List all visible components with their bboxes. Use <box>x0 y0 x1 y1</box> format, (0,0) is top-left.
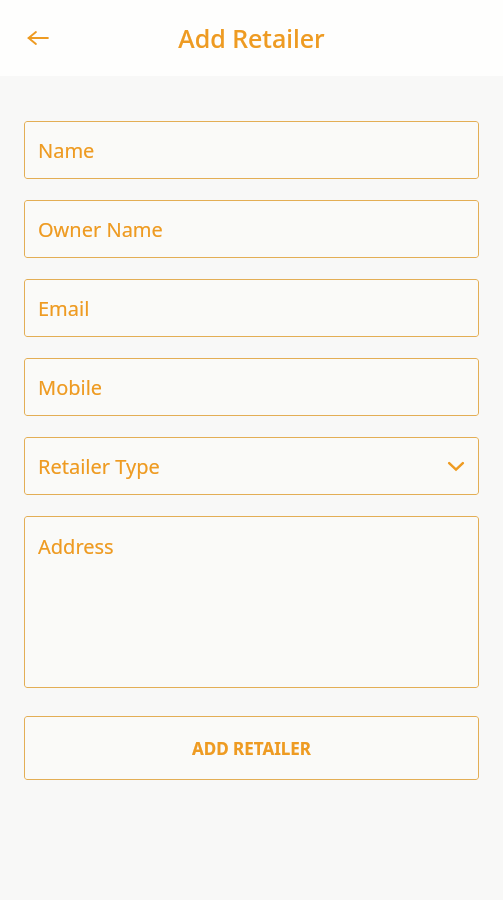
button[interactable]: ADD RETAILER <box>24 716 479 780</box>
button[interactable]: Owner Name <box>24 200 479 258</box>
button[interactable]: Name <box>24 121 479 179</box>
button[interactable]: Email <box>24 279 479 337</box>
staticText: Email <box>38 295 90 322</box>
staticText: Add Retailer <box>178 21 325 55</box>
button[interactable]: Address <box>24 516 479 688</box>
staticText: ADD RETAILER <box>192 737 311 760</box>
staticText: Owner Name <box>38 216 163 243</box>
button[interactable]: Mobile <box>24 358 479 416</box>
staticText: Name <box>38 137 95 164</box>
staticText: Mobile <box>38 374 103 401</box>
button[interactable]: Back <box>14 14 62 62</box>
button[interactable]: Retailer Type <box>24 437 479 495</box>
staticText: Address <box>38 533 114 560</box>
staticText: Retailer Type <box>38 453 160 480</box>
